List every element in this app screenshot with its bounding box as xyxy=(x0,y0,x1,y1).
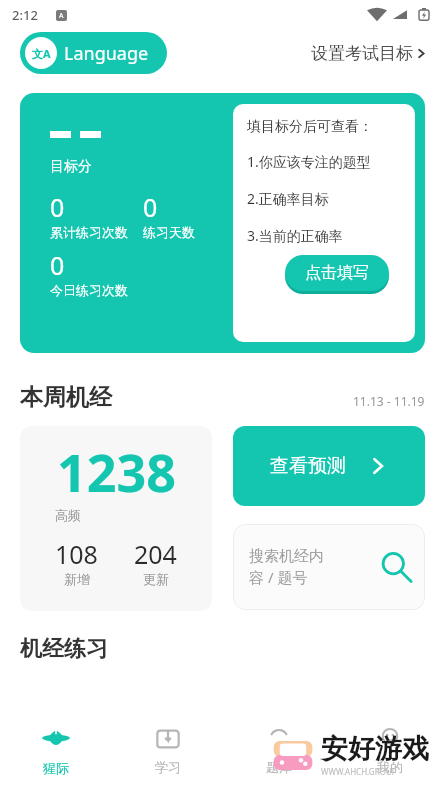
staticText: 204 xyxy=(134,537,177,571)
staticText: 安好游戏 xyxy=(321,732,429,766)
staticText: 0 xyxy=(50,248,65,282)
staticText: 本周机经 xyxy=(20,383,112,412)
staticText: 搜索机经内容 / 题号 xyxy=(249,547,331,588)
staticText: 机经练习 xyxy=(20,635,108,663)
staticText: 设置考试目标 xyxy=(311,43,413,64)
staticText: 2.正确率目标 xyxy=(247,189,329,208)
staticText: 11.13 - 11.19 xyxy=(353,393,425,409)
staticText: 1238 xyxy=(57,436,176,507)
button[interactable]: 点击填写 xyxy=(285,255,389,291)
button[interactable]: 猩际 xyxy=(0,705,112,791)
other: 学习 xyxy=(154,725,182,753)
button[interactable]: 设置考试目标 xyxy=(311,43,427,64)
staticText: A xyxy=(59,11,64,21)
staticText: Language xyxy=(64,41,149,66)
other: Search xyxy=(379,550,413,584)
button[interactable]: 我的 xyxy=(334,705,445,791)
staticText: 0 xyxy=(143,190,158,224)
staticText: 108 xyxy=(55,537,98,571)
staticText: 目标分 xyxy=(50,158,92,176)
staticText: 新增 xyxy=(64,571,90,587)
staticText: 2:12 xyxy=(12,6,38,24)
other: 题库 xyxy=(265,725,293,753)
staticText: 练习天数 xyxy=(143,224,195,240)
staticText: 3.当前的正确率 xyxy=(247,226,343,245)
button[interactable]: 搜索机经内容 / 题号 xyxy=(233,524,425,610)
staticText: 累计练习次数 xyxy=(50,224,128,240)
other: 我的 xyxy=(376,725,404,753)
staticText: 高频 xyxy=(55,507,81,523)
other: 猩际 xyxy=(41,724,71,754)
staticText: WWW.AHCH.GROUP xyxy=(321,766,397,777)
staticText: 更新 xyxy=(143,571,169,587)
button[interactable]: 学习 xyxy=(112,705,223,791)
button[interactable]: 1238 xyxy=(20,426,212,611)
staticText: 我的 xyxy=(377,759,403,775)
staticText: 文A xyxy=(32,46,51,61)
staticText: 猩际 xyxy=(43,760,69,776)
button[interactable]: 查看预测 xyxy=(233,426,425,506)
button[interactable]: 文A xyxy=(20,32,167,74)
staticText: 0 xyxy=(50,190,65,224)
staticText: 题库 xyxy=(266,759,292,775)
staticText: 查看预测 xyxy=(270,454,346,478)
staticText: 今日练习次数 xyxy=(50,282,128,298)
staticText: 填目标分后可查看： xyxy=(247,118,373,136)
staticText: 学习 xyxy=(155,759,181,775)
staticText: 1.你应该专注的题型 xyxy=(247,152,371,171)
button[interactable]: 题库 xyxy=(223,705,334,791)
staticText: 点击填写 xyxy=(305,263,369,283)
